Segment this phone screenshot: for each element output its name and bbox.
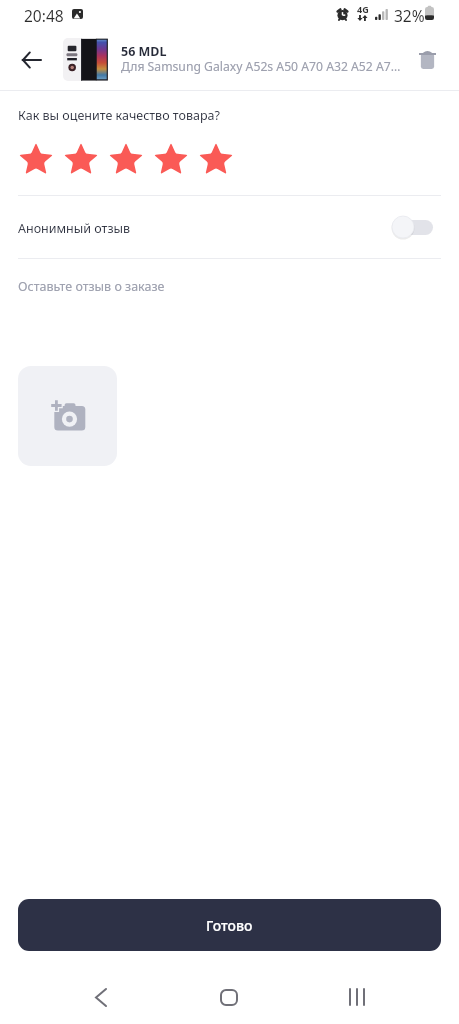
staticText: Готово [206, 916, 253, 935]
button[interactable]: Anonymous review toggle, off [387, 211, 438, 243]
button[interactable]: Готово [18, 899, 441, 951]
staticText: Оставьте отзыв о заказе [18, 278, 165, 295]
button[interactable]: Анонимный отзыв [0, 196, 459, 258]
staticText: Анонимный отзыв [18, 220, 131, 237]
staticText: 4G [357, 3, 369, 15]
button[interactable]: Delete [404, 36, 451, 83]
staticText: Для Samsung Galaxy A52s A50 A70 A32 A52 … [121, 58, 403, 75]
button[interactable]: Rate 3 stars [109, 141, 154, 175]
button[interactable]: Add photo [18, 366, 117, 466]
button[interactable]: Rate 2 stars [64, 141, 109, 175]
staticText: 32% [394, 5, 425, 26]
staticText: 20:48 [24, 5, 64, 26]
staticText: Как вы оцените качество товара? [18, 107, 220, 124]
button[interactable]: Recent apps [327, 967, 387, 1024]
button[interactable]: Rate 1 stars [19, 141, 64, 175]
button[interactable]: Home [199, 967, 259, 1024]
button[interactable]: Rate 4 stars [154, 141, 199, 175]
staticText: 56 MDL [121, 43, 167, 60]
button[interactable]: Back [8, 37, 54, 83]
button[interactable]: Back [70, 967, 130, 1024]
button[interactable]: Rate 5 stars [199, 141, 244, 175]
